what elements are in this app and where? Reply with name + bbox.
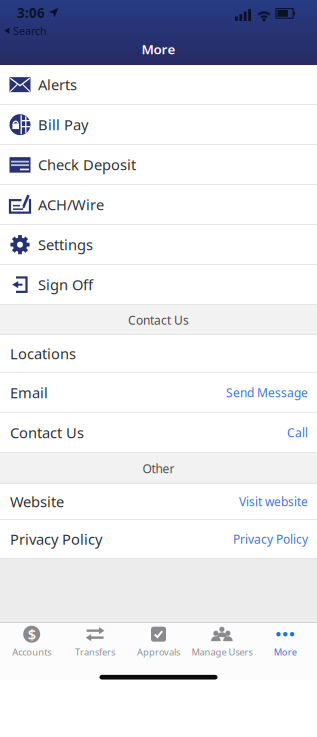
- button[interactable]: ACH/Wire: [0, 185, 317, 225]
- staticText: More: [141, 40, 175, 58]
- button[interactable]: Sign Off: [0, 265, 317, 305]
- staticText: Locations: [10, 344, 76, 363]
- staticText: Contact Us: [128, 312, 189, 328]
- button[interactable]: Settings: [0, 225, 317, 265]
- staticText: Privacy Policy: [233, 531, 308, 547]
- staticText: Settings: [38, 235, 93, 254]
- button[interactable]: Email: [0, 373, 317, 413]
- staticText: Approvals: [137, 646, 180, 658]
- staticText: More: [274, 646, 297, 658]
- staticText: $: [28, 624, 36, 644]
- staticText: Website: [10, 492, 64, 511]
- button[interactable]: Transfers: [63, 626, 127, 658]
- staticText: Visit website: [239, 494, 308, 510]
- staticText: Contact Us: [10, 423, 84, 442]
- staticText: Transfers: [75, 646, 115, 658]
- button[interactable]: Website: [0, 484, 317, 520]
- staticText: Call: [287, 425, 308, 441]
- staticText: Check Deposit: [38, 155, 136, 174]
- button[interactable]: Alerts: [0, 65, 317, 105]
- button[interactable]: Contact Us: [0, 413, 317, 453]
- staticText: ACH/Wire: [38, 195, 104, 214]
- staticText: Privacy Policy: [10, 529, 102, 549]
- button[interactable]: Approvals: [127, 626, 190, 658]
- button[interactable]: Back to Search: [0, 24, 47, 38]
- staticText: Alerts: [38, 75, 77, 94]
- button[interactable]: More: [254, 626, 317, 658]
- button[interactable]: Bill Pay: [0, 105, 317, 145]
- staticText: 3:06: [17, 4, 45, 22]
- button[interactable]: Manage Users: [190, 626, 254, 658]
- staticText: Email: [10, 383, 48, 402]
- button[interactable]: Locations: [0, 335, 317, 373]
- staticText: Other: [142, 460, 174, 476]
- staticText: Accounts: [12, 646, 51, 658]
- staticText: Send Message: [226, 385, 308, 401]
- staticText: Search: [13, 24, 47, 38]
- button[interactable]: Privacy Policy: [0, 520, 317, 559]
- button[interactable]: Check Deposit: [0, 145, 317, 185]
- staticText: Sign Off: [38, 275, 93, 294]
- staticText: Manage Users: [191, 646, 252, 658]
- staticText: Bill Pay: [38, 115, 88, 134]
- button[interactable]: $: [0, 626, 63, 658]
